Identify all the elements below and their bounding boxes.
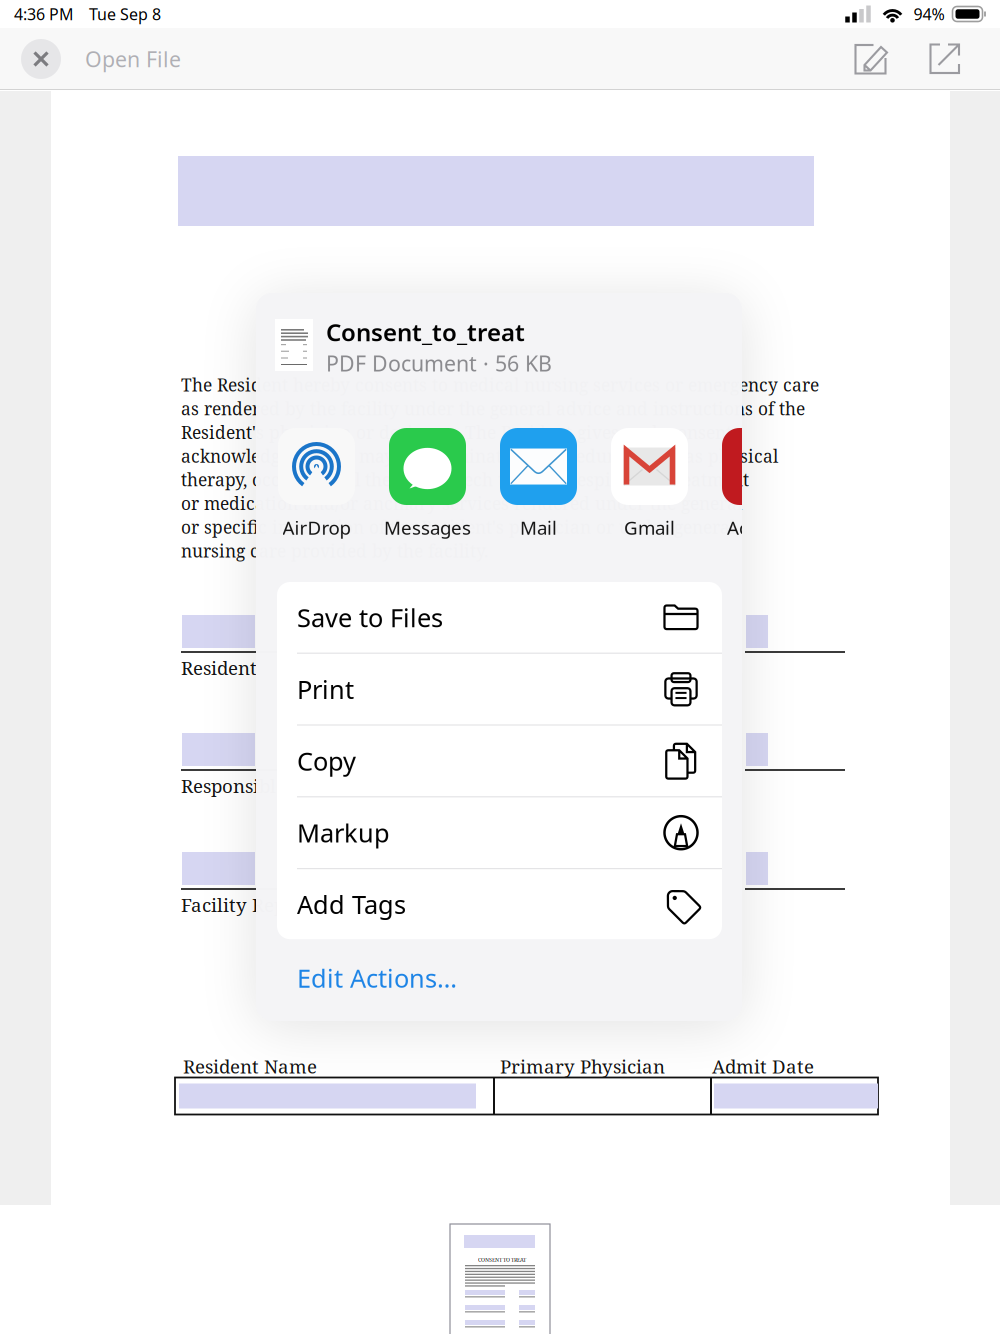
staticText: Open File — [85, 45, 181, 73]
staticText: therapy, occupational therapy, speech th… — [181, 468, 749, 491]
staticText: 4:36 PM — [14, 3, 74, 25]
button[interactable]: Acrobat — [722, 428, 799, 540]
button[interactable]: Copy — [277, 726, 722, 797]
staticText: Edit Actions… — [297, 961, 457, 995]
staticText: Resident's physician or designee. The Re… — [181, 420, 732, 444]
staticText: nursing care provided by the facility. — [181, 539, 488, 563]
button[interactable]: Gmail — [611, 428, 688, 540]
staticText: or specific instruction of the Resident'… — [181, 515, 735, 539]
staticText: The Resident hereby consents to medical … — [181, 373, 819, 397]
staticText: PDF Document · 56 KB — [326, 349, 552, 377]
staticText: Primary Physician — [500, 1053, 665, 1079]
staticText: Facility Representative — [181, 892, 386, 917]
button[interactable]: Print — [277, 654, 722, 726]
staticText: Resident Name — [183, 1053, 317, 1079]
staticText: Print — [297, 672, 354, 706]
staticText: Gmail — [624, 515, 675, 540]
staticText: Consent_to_treat — [326, 316, 525, 348]
staticText: CONSENT TO TREAT — [478, 1256, 526, 1263]
staticText: Acrobat — [727, 515, 794, 540]
button[interactable]: Markup — [277, 797, 722, 869]
staticText: Tue Sep 8 — [89, 3, 161, 25]
staticText: Copy — [297, 744, 356, 778]
button[interactable]: Messages — [389, 428, 466, 540]
staticText: Messages — [384, 515, 471, 540]
staticText: Responsible Party / Resident's Agent — [181, 773, 500, 798]
staticText: AirDrop — [282, 515, 350, 540]
staticText: Add Tags — [297, 887, 406, 921]
button[interactable]: Edit Actions… — [256, 953, 701, 1003]
staticText: Save to Files — [297, 600, 443, 634]
staticText: Markup — [297, 816, 390, 849]
button[interactable]: Share — [916, 30, 974, 88]
staticText: Resident — [181, 655, 257, 680]
button[interactable]: Markup — [842, 30, 900, 88]
staticText: or medication and/or ancillary services … — [181, 491, 742, 515]
button[interactable]: AirDrop — [278, 428, 355, 540]
staticText: Admit Date — [712, 1053, 814, 1079]
button[interactable]: Save to Files — [277, 582, 722, 654]
button[interactable]: Mail — [500, 428, 577, 540]
button[interactable]: Close — [10, 28, 72, 90]
staticText: as rendered by the facility under the ge… — [181, 397, 805, 420]
staticText: acknowledging there may be examination, … — [181, 444, 778, 468]
staticText: Mail — [520, 515, 557, 540]
button[interactable]: Add Tags — [277, 869, 722, 939]
staticText: 94% — [913, 3, 944, 25]
